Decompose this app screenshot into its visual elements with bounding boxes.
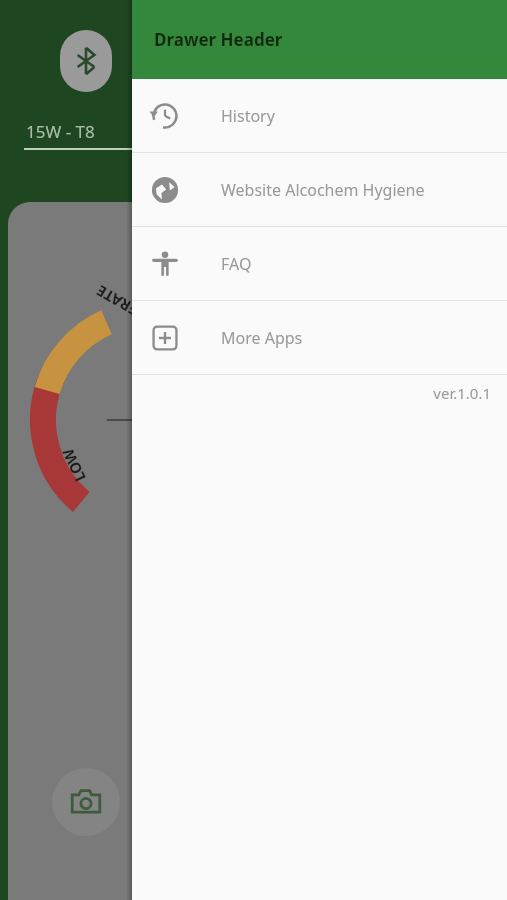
button[interactable]: History [132, 79, 507, 152]
button[interactable]: FAQ [132, 227, 507, 300]
staticText: FAQ [221, 253, 252, 275]
button[interactable]: More Apps [132, 301, 507, 374]
staticText: MODERATE [92, 281, 173, 339]
staticText: Website Alcochem Hygiene [221, 179, 425, 201]
staticText: More Apps [221, 327, 303, 349]
button[interactable]: Camera [52, 768, 120, 836]
staticText: Drawer Header [154, 28, 283, 51]
staticText: ver.1.0.1 [433, 383, 491, 403]
staticText: History [221, 105, 275, 127]
other: Bluetooth [60, 30, 112, 92]
staticText: 15W - T8 [26, 120, 95, 143]
button[interactable]: Website Alcochem Hygiene [132, 153, 507, 226]
staticText: LOW [57, 445, 90, 485]
